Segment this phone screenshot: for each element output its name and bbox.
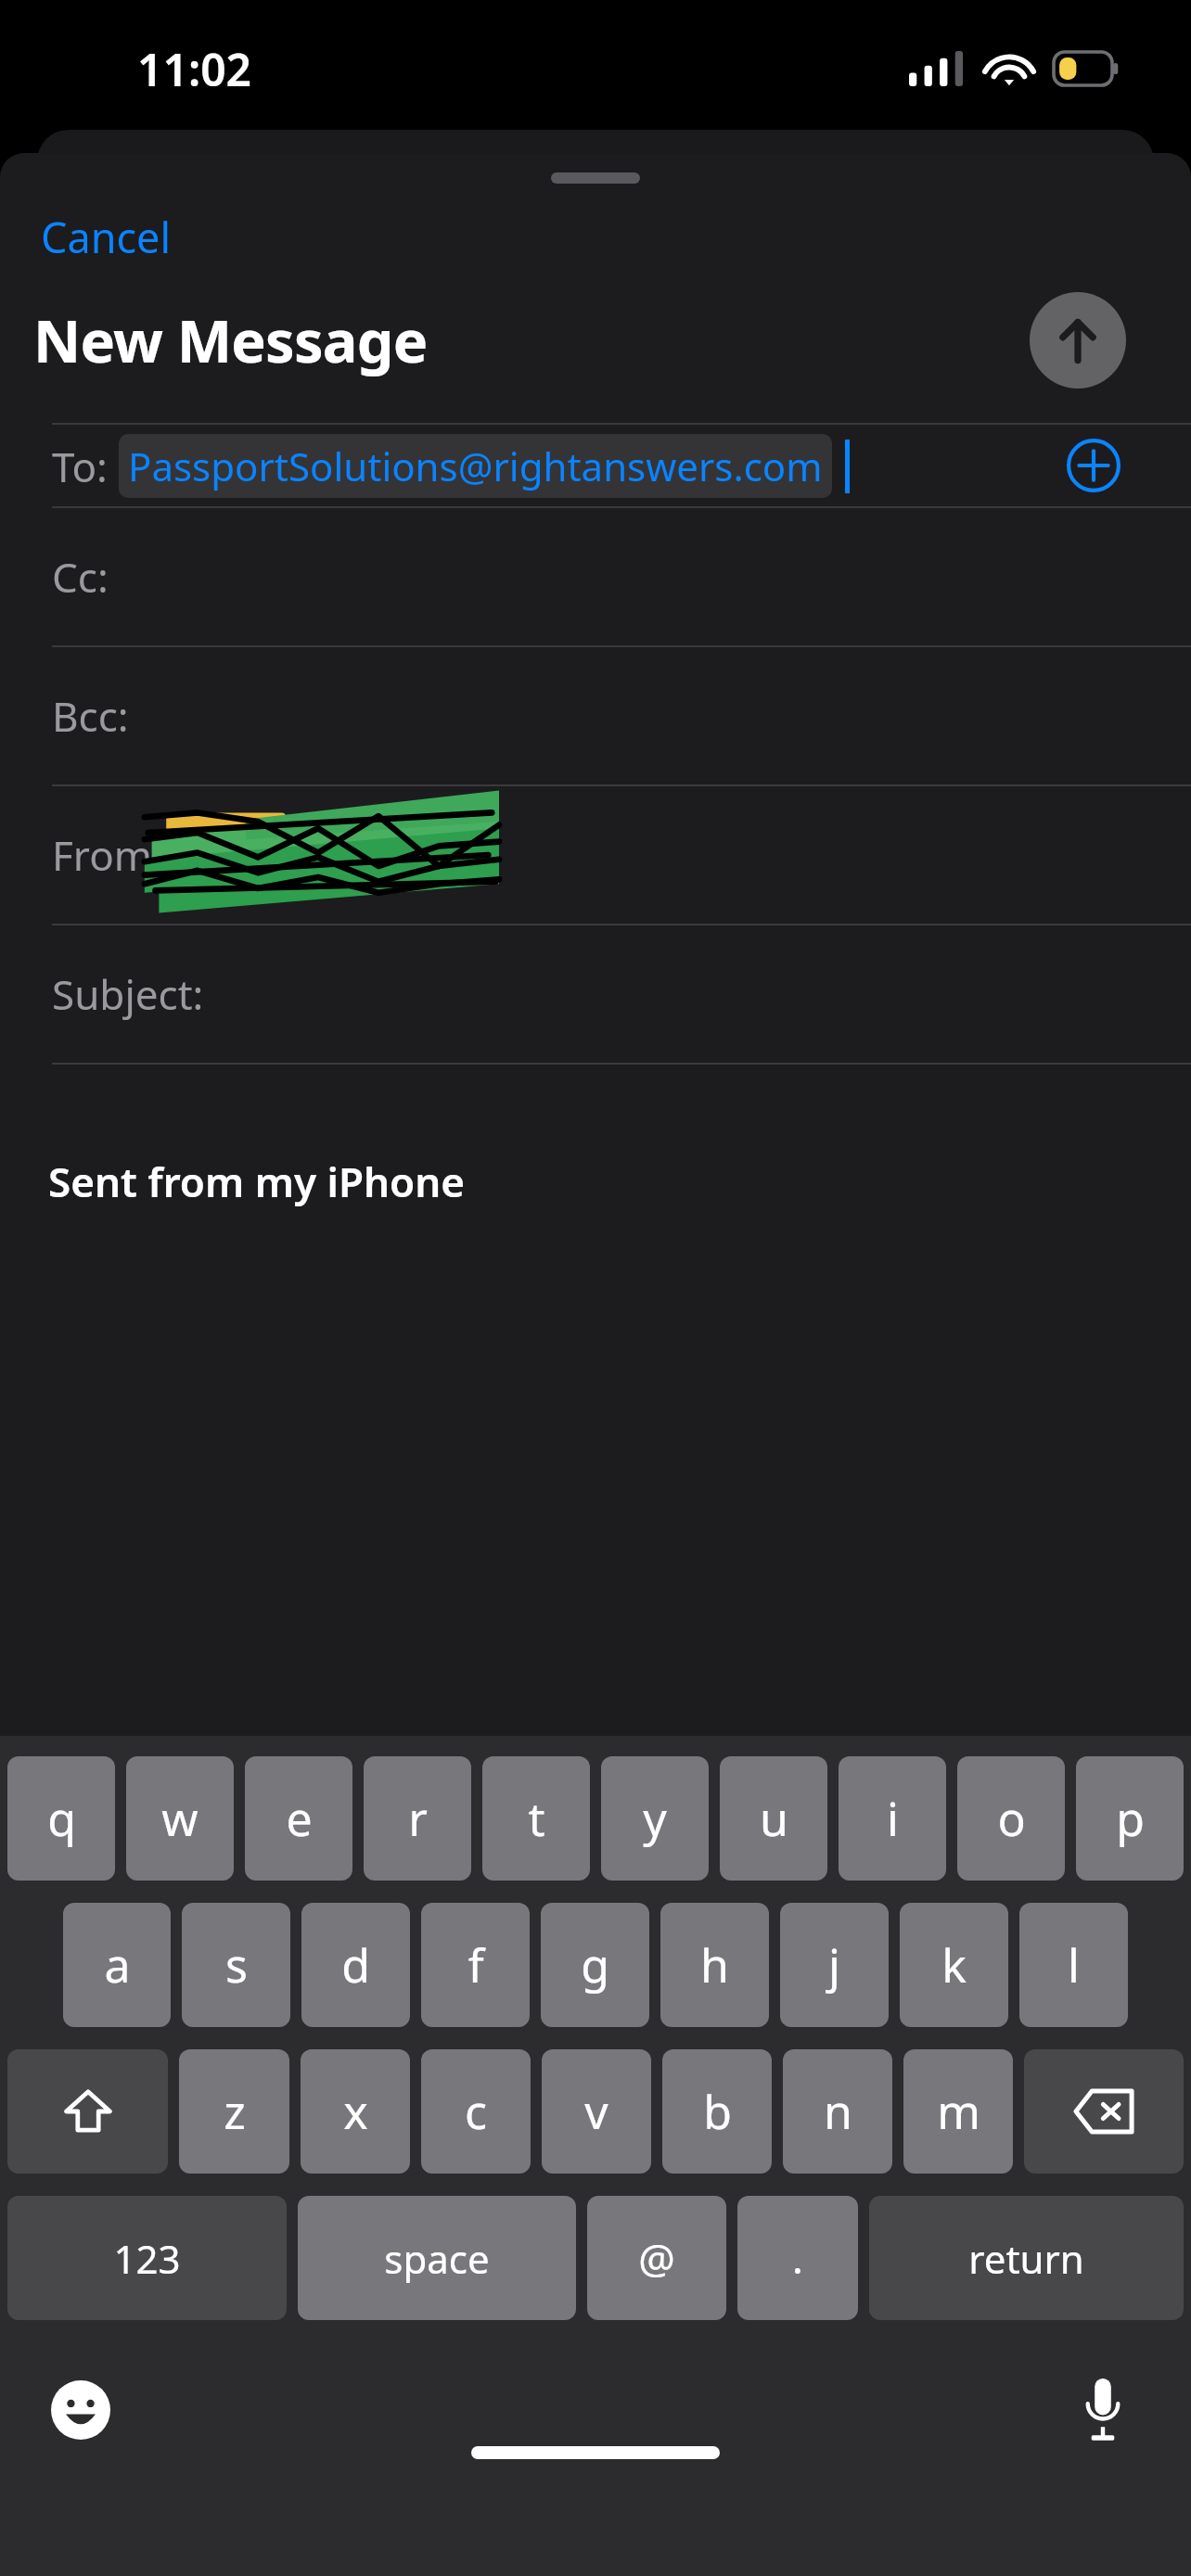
staticText: New Message: [33, 300, 428, 380]
staticText: s: [225, 1933, 248, 1996]
button[interactable]: Send: [1030, 292, 1126, 389]
staticText: g: [581, 1933, 609, 1996]
staticText: Cancel: [41, 209, 172, 265]
button[interactable]: @: [587, 2196, 726, 2320]
staticText: m: [937, 2080, 980, 2143]
staticText: 123: [113, 2232, 181, 2285]
button[interactable]: r: [364, 1756, 471, 1881]
button[interactable]: k: [900, 1903, 1008, 2027]
button[interactable]: space: [298, 2196, 576, 2320]
button[interactable]: f: [421, 1903, 530, 2027]
staticText: Cc:: [52, 549, 109, 605]
staticText: .: [792, 2230, 803, 2286]
button[interactable]: z: [179, 2049, 289, 2174]
staticText: To:: [52, 439, 108, 494]
button[interactable]: Cc:: [0, 508, 1191, 645]
button[interactable]: g: [541, 1903, 649, 2027]
staticText: return: [968, 2232, 1084, 2285]
button[interactable]: Dictate: [1067, 2374, 1139, 2446]
button[interactable]: Add contact: [1065, 437, 1122, 494]
button[interactable]: q: [7, 1756, 115, 1881]
button[interactable]: o: [957, 1756, 1065, 1881]
button[interactable]: p: [1076, 1756, 1184, 1881]
staticText: z: [224, 2080, 246, 2143]
staticText: q: [47, 1787, 76, 1850]
staticText: @: [638, 2230, 675, 2286]
button[interactable]: x: [301, 2049, 410, 2174]
staticText: a: [104, 1933, 131, 1996]
staticText: space: [384, 2232, 490, 2285]
button[interactable]: To:: [0, 425, 1191, 506]
button[interactable]: Emoji keyboard: [45, 2374, 117, 2446]
staticText: x: [343, 2080, 368, 2143]
button[interactable]: y: [601, 1756, 709, 1881]
staticText: 11:02: [137, 39, 252, 99]
button[interactable]: e: [245, 1756, 352, 1881]
button[interactable]: i: [839, 1756, 946, 1881]
button[interactable]: Bcc:: [0, 647, 1191, 784]
button[interactable]: Cancel: [37, 203, 175, 271]
button[interactable]: u: [720, 1756, 827, 1881]
button[interactable]: s: [182, 1903, 290, 2027]
staticText: l: [1068, 1933, 1080, 1996]
button[interactable]: Subject:: [0, 925, 1191, 1063]
staticText: t: [528, 1787, 545, 1850]
button[interactable]: j: [780, 1903, 889, 2027]
button[interactable]: t: [482, 1756, 590, 1881]
staticText: y: [643, 1787, 667, 1850]
staticText: i: [887, 1787, 899, 1850]
button[interactable]: l: [1019, 1903, 1128, 2027]
button[interactable]: Shift: [7, 2049, 168, 2174]
button[interactable]: 123: [7, 2196, 287, 2320]
staticText: PassportSolutions@rightanswers.com: [128, 440, 823, 492]
button[interactable]: a: [63, 1903, 171, 2027]
button[interactable]: b: [662, 2049, 772, 2174]
staticText: d: [341, 1933, 370, 1996]
staticText: Bcc:: [52, 688, 129, 744]
button[interactable]: v: [542, 2049, 651, 2174]
staticText: o: [997, 1787, 1026, 1850]
staticText: Sent from my iPhone: [48, 1154, 466, 1209]
staticText: e: [286, 1787, 313, 1850]
button[interactable]: From:: [0, 786, 1191, 924]
staticText: r: [408, 1787, 428, 1850]
staticText: p: [1116, 1787, 1145, 1850]
staticText: f: [467, 1933, 484, 1996]
staticText: b: [703, 2080, 732, 2143]
button[interactable]: w: [126, 1756, 234, 1881]
button[interactable]: d: [301, 1903, 410, 2027]
staticText: u: [760, 1787, 788, 1850]
staticText: w: [161, 1787, 198, 1850]
staticText: h: [700, 1933, 729, 1996]
button[interactable]: return: [869, 2196, 1184, 2320]
staticText: k: [941, 1933, 967, 1996]
button[interactable]: Backspace: [1024, 2049, 1184, 2174]
staticText: j: [828, 1933, 840, 1996]
button[interactable]: .: [737, 2196, 858, 2320]
staticText: v: [584, 2080, 608, 2143]
staticText: n: [824, 2080, 852, 2143]
staticText: c: [465, 2080, 487, 2143]
staticText: From:: [52, 827, 163, 883]
button[interactable]: n: [783, 2049, 892, 2174]
staticText: Subject:: [52, 966, 204, 1022]
button[interactable]: m: [903, 2049, 1013, 2174]
button[interactable]: c: [421, 2049, 531, 2174]
button[interactable]: h: [660, 1903, 769, 2027]
